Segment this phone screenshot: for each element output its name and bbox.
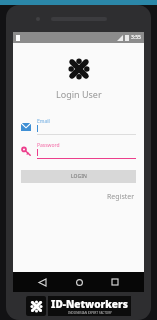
button[interactable]: Recent apps [108, 275, 122, 289]
button[interactable]: Back [35, 275, 49, 289]
staticText: 3:55 [131, 34, 141, 41]
staticText: Email [37, 118, 50, 125]
button[interactable]: Home [72, 275, 86, 289]
other: Password [21, 146, 31, 156]
staticText: LOGIN [71, 173, 87, 180]
staticText: Login User [56, 88, 102, 100]
staticText: INDONESIAN EXPERT FACTORY [68, 311, 112, 315]
other: Email [21, 123, 31, 131]
staticText: ID-Networkers [51, 297, 128, 311]
button[interactable]: Email [21, 118, 136, 135]
staticText: Password [37, 142, 60, 149]
button[interactable]: Register [107, 192, 135, 202]
staticText: Register [107, 192, 135, 202]
button[interactable]: Password [21, 142, 136, 159]
button[interactable]: LOGIN [21, 170, 136, 183]
